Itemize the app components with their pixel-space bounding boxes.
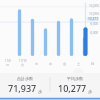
staticText: 火 [21,63,25,67]
staticText: 歩 [88,89,92,94]
staticText: 歩 [38,89,42,94]
button[interactable]: 平均歩数 [50,76,100,94]
staticText: 16,000 [89,4,99,8]
staticText: 平均歩数 [67,76,83,81]
staticText: 12,000 [89,12,99,16]
staticText: 4,000 [90,31,99,35]
button[interactable]: 16,000 [0,0,100,68]
staticText: 10,277 [58,82,87,94]
staticText: 10,277 [88,17,98,21]
staticText: 71,937 [8,82,37,94]
button[interactable]: 合計歩数 [0,76,50,94]
staticText: 木 [49,62,53,66]
staticText: 金 [63,62,67,66]
staticText: 11/6 [5,59,11,63]
staticText: 日 [91,62,95,66]
staticText: 土 [77,62,81,66]
staticText: 11/10 [19,59,27,63]
staticText: 月 [6,63,10,67]
staticText: 8,000 [90,22,99,26]
staticText: 水 [35,62,39,66]
staticText: 合計歩数 [17,76,33,81]
